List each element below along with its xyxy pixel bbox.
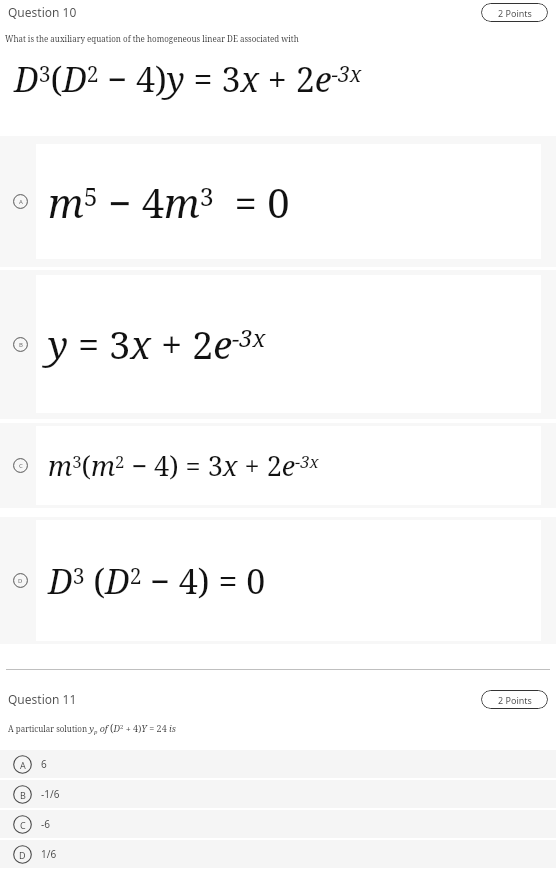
staticText: -6 [41,817,50,831]
staticText: Question 10 [8,4,481,20]
button[interactable]: D3 (D2 − 4) = 0 [0,517,556,644]
staticText: B [19,341,23,349]
button[interactable]: y = 3x + 2e−3x [0,270,556,419]
staticText: Question 11 [8,691,481,707]
button[interactable]: m5 − 4m3 = 0 [0,136,556,267]
button[interactable]: C [0,810,556,838]
staticText: 1/6 [41,847,57,861]
staticText: D3 (D2 − 4) = 0 [48,558,266,604]
staticText: What is the auxiliary equation of the ho… [5,33,551,44]
staticText: 2 Points [498,7,532,19]
staticText: y = 3x + 2e−3x [48,318,266,370]
staticText: -1/6 [41,787,60,801]
staticText: 6 [41,757,47,771]
button[interactable]: B [0,780,556,808]
staticText: m3(m2 − 4) = 3x + 2e−3x [48,447,319,484]
staticText: A [20,759,26,771]
button[interactable]: m3(m2 − 4) = 3x + 2e−3x [0,423,556,508]
staticText: m5 − 4m3 = 0 [48,175,290,229]
staticText: D [18,577,23,585]
button[interactable]: 2 Points [481,690,548,709]
staticText: A particular solution yp of (D2 + 4)Y = … [8,721,176,735]
staticText: D [19,849,26,861]
staticText: C [20,819,26,831]
staticText: D3(D2 − 4)y = 3x + 2e−3x [14,56,362,102]
button[interactable]: A [0,750,556,778]
staticText: C [19,462,23,470]
staticText: B [20,789,26,801]
button[interactable]: 2 Points [481,3,548,22]
staticText: 2 Points [498,694,532,706]
staticText: A [19,198,23,206]
button[interactable]: D [0,840,556,868]
